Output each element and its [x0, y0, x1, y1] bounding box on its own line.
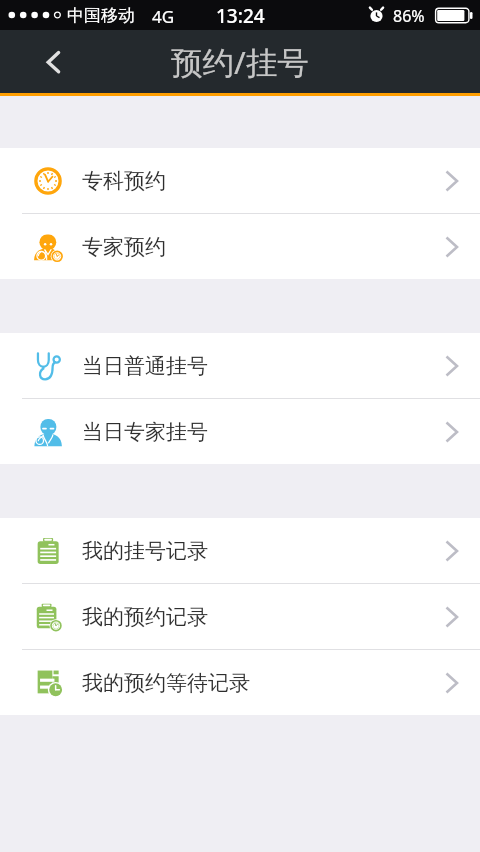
- button[interactable]: 我的预约等待记录: [0, 650, 480, 715]
- staticText: 预约/挂号: [171, 40, 309, 83]
- button[interactable]: 当日专家挂号: [0, 399, 480, 464]
- staticText: 我的预约等待记录: [82, 670, 250, 696]
- staticText: 当日专家挂号: [82, 419, 208, 445]
- staticText: 86%: [393, 5, 425, 27]
- button[interactable]: 当日普通挂号: [0, 333, 480, 398]
- button[interactable]: 专家预约: [0, 214, 480, 279]
- button[interactable]: 专科预约: [0, 148, 480, 213]
- staticText: 中国移动: [67, 5, 135, 26]
- button[interactable]: Back: [25, 34, 81, 90]
- staticText: 专科预约: [82, 168, 166, 194]
- staticText: 我的挂号记录: [82, 538, 208, 564]
- staticText: 4G: [152, 5, 175, 28]
- staticText: 我的预约记录: [82, 604, 208, 630]
- button[interactable]: 我的预约记录: [0, 584, 480, 649]
- staticText: 当日普通挂号: [82, 353, 208, 379]
- staticText: 13:24: [216, 3, 265, 29]
- staticText: 专家预约: [82, 234, 166, 260]
- button[interactable]: 我的挂号记录: [0, 518, 480, 583]
